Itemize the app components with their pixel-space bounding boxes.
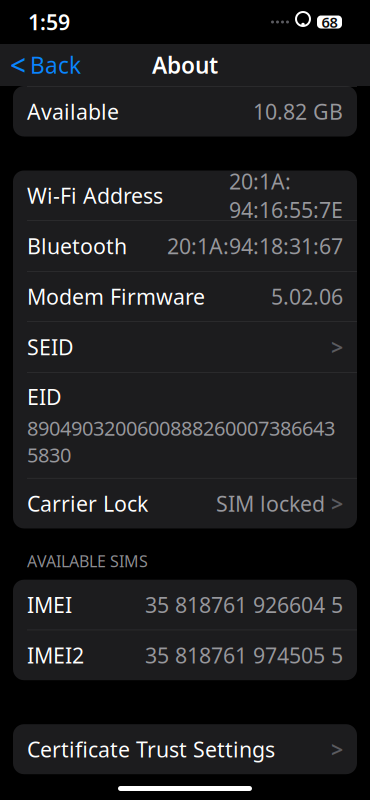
staticText: > — [331, 333, 343, 361]
staticText: > — [331, 735, 343, 763]
staticText: 10.82 GB — [253, 97, 343, 126]
button[interactable]: Certificate Trust Settings — [13, 724, 357, 774]
button[interactable]: Bluetooth — [13, 221, 357, 271]
staticText: Available — [27, 97, 119, 126]
staticText: Wi-Fi Address — [27, 181, 163, 210]
staticText: Certificate Trust Settings — [27, 735, 275, 763]
button[interactable]: Available — [13, 86, 357, 136]
staticText: 1:59 — [28, 8, 70, 36]
staticText: SIM locked — [216, 489, 325, 518]
button[interactable]: IMEI — [13, 580, 357, 630]
staticText: AVAILABLE SIMS — [27, 550, 148, 572]
staticText: > — [331, 489, 343, 518]
staticText: 5.02.06 — [271, 282, 343, 311]
button[interactable]: Wi-Fi Address — [13, 170, 357, 220]
staticText: 20:1A:94:18:31:67 — [167, 232, 343, 260]
staticText: 35 818761 926604 5 — [145, 590, 343, 619]
staticText: IMEI — [27, 590, 72, 619]
button[interactable]: Modem Firmware — [13, 271, 357, 321]
staticText: EID — [27, 382, 62, 411]
button[interactable]: Home — [118, 786, 252, 800]
staticText: 20:1A:94:16:55:7E — [229, 167, 343, 224]
button[interactable]: SEID — [13, 322, 357, 372]
staticText: Back — [30, 50, 81, 80]
button[interactable]: EID — [13, 372, 357, 478]
staticText: 89049032006008882600073866435830 — [27, 415, 335, 468]
staticText: 68 — [321, 12, 337, 32]
staticText: < — [10, 46, 26, 84]
staticText: Carrier Lock — [27, 489, 148, 518]
staticText: 35 818761 974505 5 — [145, 641, 343, 669]
staticText: SEID — [27, 333, 74, 361]
staticText: IMEI2 — [27, 641, 84, 669]
staticText: Bluetooth — [27, 232, 127, 260]
button[interactable]: Carrier Lock — [13, 478, 357, 528]
button[interactable]: < — [0, 44, 91, 86]
staticText: About — [152, 50, 218, 80]
button[interactable]: IMEI2 — [13, 630, 357, 680]
staticText: Modem Firmware — [27, 282, 205, 311]
